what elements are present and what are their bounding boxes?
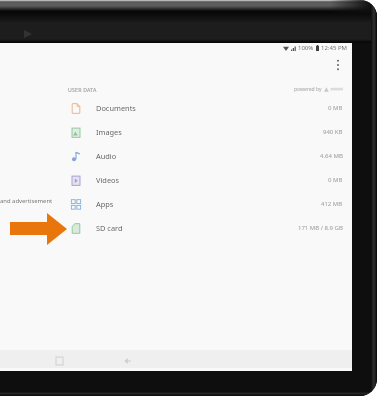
button[interactable]: Back (116, 350, 136, 368)
staticText: 940 KB (323, 128, 343, 136)
staticText: USER DATA (68, 86, 97, 93)
button[interactable]: Recents (49, 350, 69, 368)
staticText: Documents (96, 103, 136, 113)
staticText: 0 MB (328, 176, 343, 184)
button[interactable]: Videos (0, 168, 352, 192)
staticText: 0 MB (328, 104, 343, 112)
button[interactable]: Audio (0, 144, 352, 168)
staticText: 412 MB (321, 200, 343, 208)
button[interactable]: Documents (0, 96, 352, 120)
staticText: 171 MB / 8.9 GB (298, 224, 343, 232)
button[interactable]: SD card (0, 216, 352, 240)
staticText: SD card (96, 223, 123, 233)
staticText: 100% (298, 44, 314, 52)
staticText: powered by (294, 86, 322, 93)
staticText: Videos (96, 175, 120, 185)
staticText: and advertisement (0, 197, 53, 205)
staticText: Images (96, 127, 122, 137)
staticText: 12:45 PM (321, 44, 347, 52)
button[interactable]: Apps (0, 192, 352, 216)
staticText: Apps (96, 199, 114, 209)
staticText: 4.64 MB (320, 152, 343, 160)
button[interactable]: Images (0, 120, 352, 144)
staticText: Audio (96, 151, 117, 161)
button[interactable]: More options (330, 57, 346, 73)
